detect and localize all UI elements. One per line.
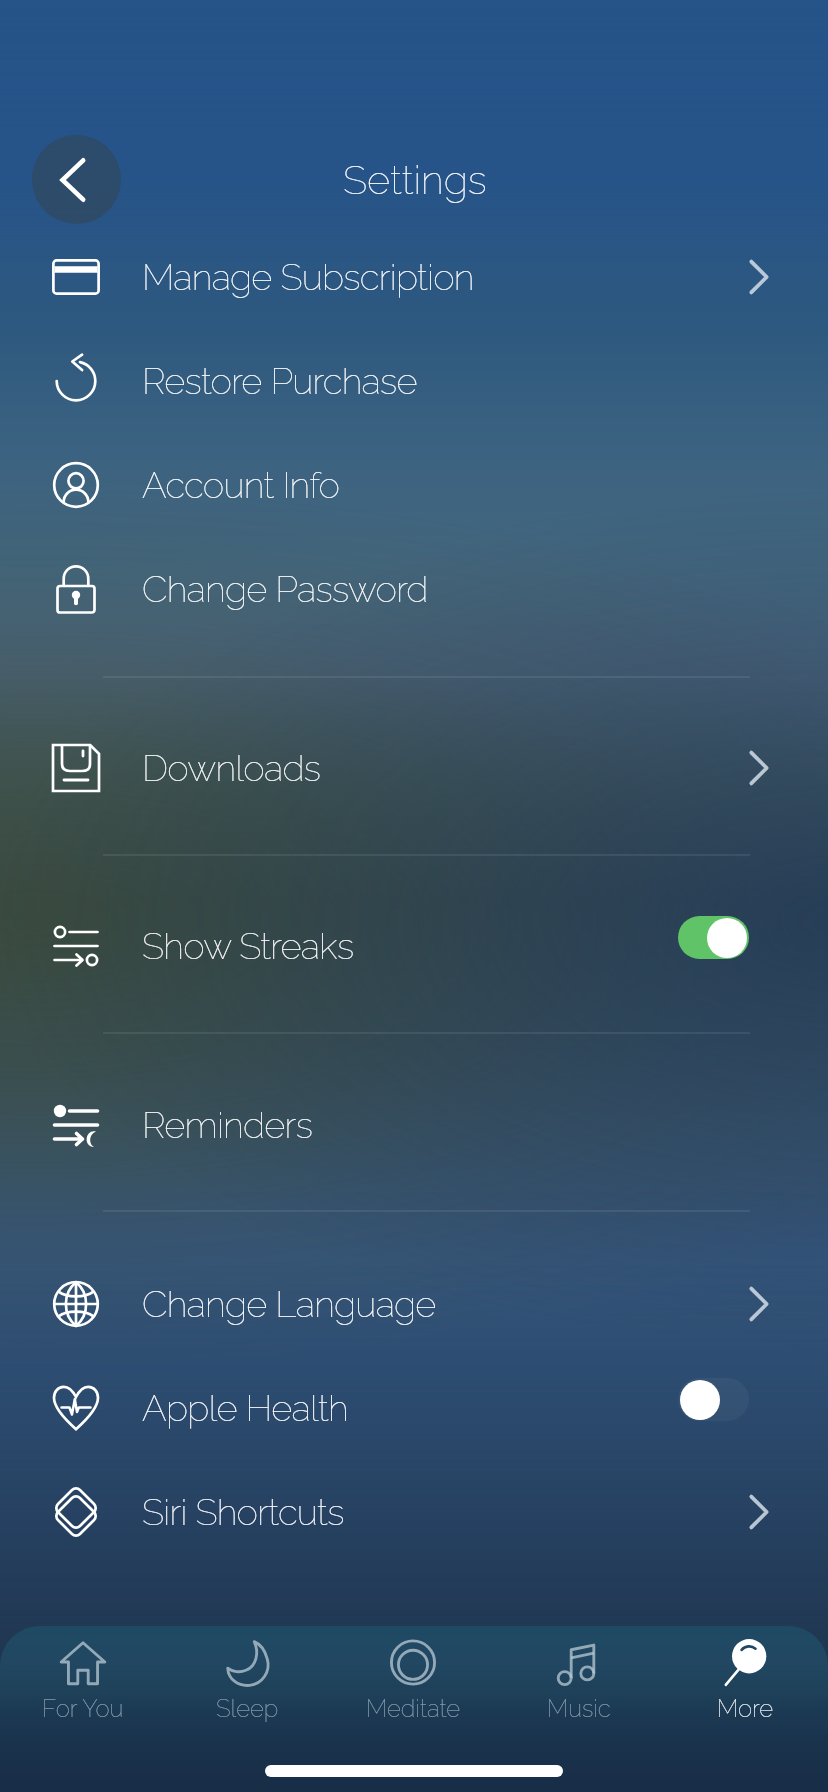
button[interactable]: Change Language: [0, 1259, 828, 1349]
staticText: Settings: [343, 156, 487, 203]
button[interactable]: For You: [0, 1626, 165, 1732]
staticText: More: [717, 1694, 774, 1722]
button[interactable]: Sleep: [165, 1626, 330, 1732]
other: Open: [739, 1284, 779, 1324]
staticText: Restore Purchase: [142, 360, 417, 403]
button[interactable]: More: [662, 1626, 828, 1732]
button[interactable]: Off: [678, 1378, 749, 1421]
staticText: Change Language: [142, 1283, 436, 1326]
staticText: Manage Subscription: [142, 256, 474, 299]
button[interactable]: Back: [32, 135, 121, 224]
staticText: Siri Shortcuts: [142, 1491, 344, 1534]
button[interactable]: Restore Purchase: [0, 336, 828, 426]
other: Open: [739, 1492, 779, 1532]
button[interactable]: Reminders: [0, 1080, 828, 1170]
staticText: Sleep: [216, 1694, 279, 1722]
staticText: Change Password: [142, 568, 428, 611]
button[interactable]: Show Streaks: [0, 901, 828, 991]
button[interactable]: Meditate: [330, 1626, 496, 1732]
button[interactable]: Music: [496, 1626, 662, 1732]
staticText: Downloads: [142, 747, 321, 790]
staticText: Music: [547, 1694, 611, 1722]
staticText: For You: [42, 1694, 124, 1722]
staticText: Meditate: [366, 1694, 461, 1722]
staticText: Show Streaks: [142, 925, 354, 968]
staticText: Apple Health: [142, 1387, 348, 1430]
button[interactable]: Siri Shortcuts: [0, 1467, 828, 1557]
button[interactable]: Apple Health: [0, 1363, 828, 1453]
staticText: Reminders: [142, 1104, 313, 1147]
button[interactable]: On: [678, 916, 749, 959]
other: Open: [739, 257, 779, 297]
button[interactable]: Downloads: [0, 723, 828, 813]
button[interactable]: Account Info: [0, 440, 828, 530]
button[interactable]: Change Password: [0, 544, 828, 634]
other: Open: [739, 748, 779, 788]
staticText: Account Info: [142, 464, 340, 507]
button[interactable]: Manage Subscription: [0, 232, 828, 322]
